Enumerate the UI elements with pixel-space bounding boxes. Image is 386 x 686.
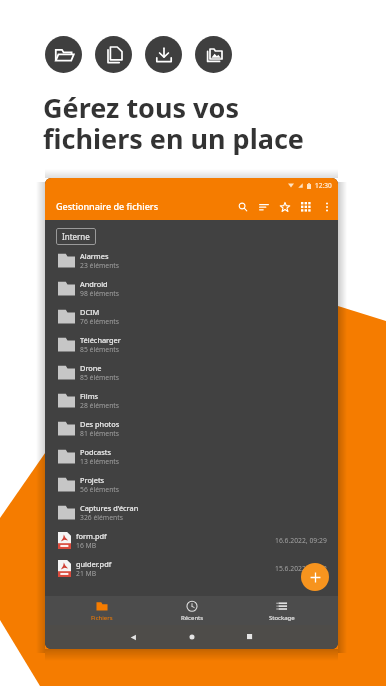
button[interactable]: Folder bbox=[45, 36, 82, 73]
staticText: 13 éléments bbox=[80, 457, 120, 466]
staticText: Gestionnaire de fichiers bbox=[56, 200, 159, 212]
button[interactable]: Gallery bbox=[195, 36, 232, 73]
button[interactable]: Grid view bbox=[298, 199, 313, 214]
staticText: Films bbox=[80, 391, 99, 401]
button[interactable]: Sort bbox=[256, 199, 271, 214]
staticText: Récents bbox=[181, 614, 204, 622]
button[interactable]: Des photos bbox=[45, 414, 338, 442]
staticText: 76 éléments bbox=[80, 317, 120, 326]
button[interactable]: Projets bbox=[45, 470, 338, 498]
staticText: 98 éléments bbox=[80, 289, 120, 298]
staticText: 16.6.2022, 09:29 bbox=[275, 536, 327, 545]
staticText: 85 éléments bbox=[80, 373, 120, 382]
staticText: 12:30 bbox=[315, 181, 332, 190]
button[interactable]: Films bbox=[45, 386, 338, 414]
button[interactable]: Stockage bbox=[237, 596, 327, 625]
button[interactable]: Captures d'écran bbox=[45, 498, 338, 526]
staticText: 15.6.2022, 17:02 bbox=[275, 564, 327, 573]
staticText: Fichiers bbox=[91, 614, 113, 622]
button[interactable]: form.pdf bbox=[45, 526, 338, 554]
staticText: Des photos bbox=[80, 419, 120, 429]
staticText: Captures d'écran bbox=[80, 503, 139, 513]
staticText: Interne bbox=[62, 231, 90, 242]
staticText: Drone bbox=[80, 363, 102, 373]
button[interactable]: Android bbox=[45, 274, 338, 302]
button[interactable]: Podcasts bbox=[45, 442, 338, 470]
staticText: 16 MB bbox=[76, 541, 97, 550]
button[interactable]: Copy files bbox=[95, 36, 132, 73]
staticText: guider.pdf bbox=[76, 559, 112, 569]
staticText: 28 éléments bbox=[80, 401, 120, 410]
staticText: 326 éléments bbox=[80, 513, 123, 522]
staticText: DCIM bbox=[80, 307, 100, 317]
button[interactable]: Download bbox=[145, 36, 182, 73]
button[interactable]: Add bbox=[301, 563, 329, 591]
button[interactable]: Alarmes bbox=[45, 246, 338, 274]
button[interactable]: Récents bbox=[147, 596, 237, 625]
staticText: Alarmes bbox=[80, 251, 109, 261]
button[interactable]: Drone bbox=[45, 358, 338, 386]
button[interactable]: Favorites bbox=[277, 199, 292, 214]
button[interactable]: Télécharger bbox=[45, 330, 338, 358]
staticText: 85 éléments bbox=[80, 345, 120, 354]
staticText: Podcasts bbox=[80, 447, 111, 457]
staticText: 23 éléments bbox=[80, 261, 120, 270]
button[interactable]: Fichiers bbox=[56, 596, 147, 625]
staticText: 81 éléments bbox=[80, 429, 120, 438]
staticText: Android bbox=[80, 279, 108, 289]
staticText: 21 MB bbox=[76, 569, 97, 578]
staticText: 56 éléments bbox=[80, 485, 120, 494]
staticText: Gérez tous vos fichiers en un place bbox=[43, 89, 304, 157]
staticText: Projets bbox=[80, 475, 105, 485]
staticText: form.pdf bbox=[76, 531, 107, 541]
button[interactable]: Search bbox=[235, 199, 250, 214]
button[interactable]: Interne bbox=[56, 228, 96, 245]
staticText: Stockage bbox=[269, 614, 295, 622]
button[interactable]: DCIM bbox=[45, 302, 338, 330]
button[interactable]: More options bbox=[319, 199, 334, 214]
staticText: Télécharger bbox=[80, 335, 121, 345]
button[interactable]: guider.pdf bbox=[45, 554, 338, 582]
